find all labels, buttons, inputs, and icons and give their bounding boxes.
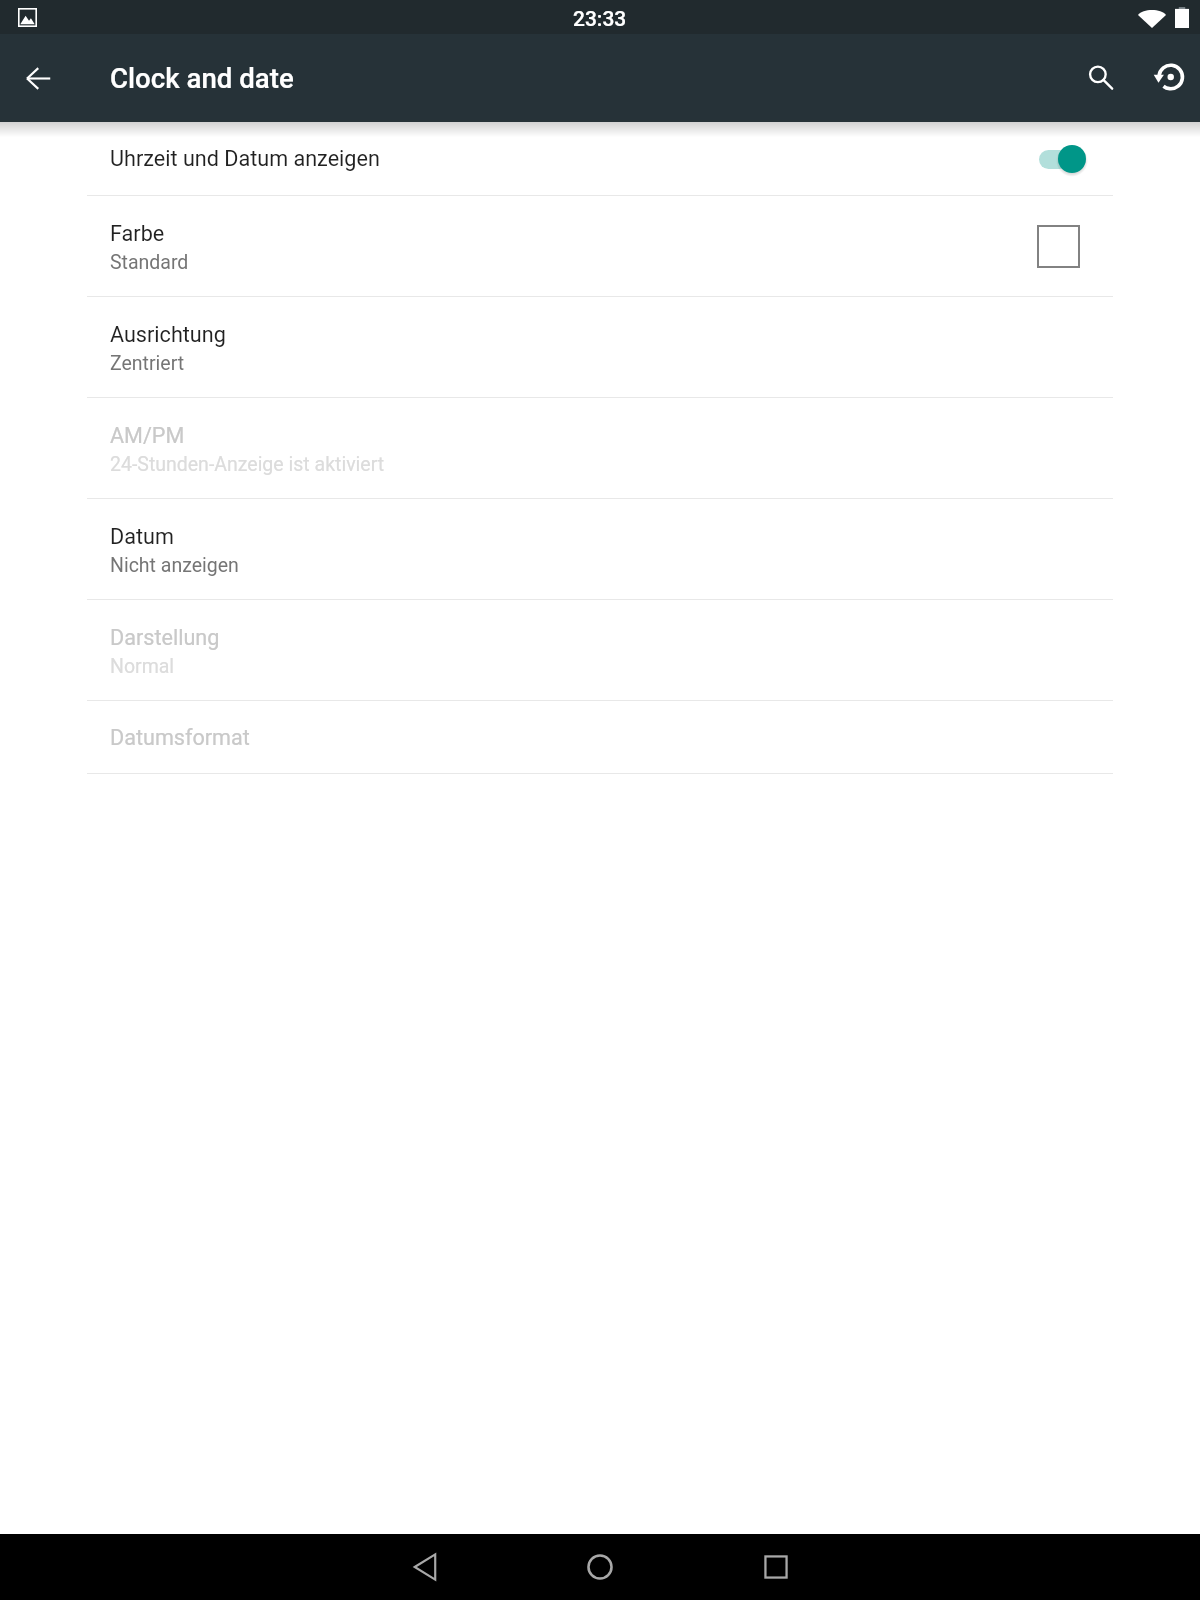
button[interactable]: Restore defaults — [1124, 34, 1200, 122]
button[interactable]: Colour — [1037, 225, 1080, 268]
button[interactable]: Datumsformat — [0, 701, 1200, 773]
staticText: Darstellung — [110, 625, 220, 650]
staticText: 23:33 — [573, 7, 627, 32]
staticText: Datum — [110, 524, 174, 549]
button[interactable]: Datum — [0, 499, 1200, 599]
button[interactable]: AM/PM — [0, 398, 1200, 498]
staticText: Datumsformat — [110, 725, 250, 750]
button[interactable]: Recent apps — [743, 1534, 809, 1600]
staticText: Standard — [110, 251, 189, 274]
staticText: Ausrichtung — [110, 322, 226, 347]
staticText: Clock and date — [110, 62, 294, 94]
staticText: Normal — [110, 655, 175, 678]
button[interactable]: Darstellung — [0, 600, 1200, 700]
button[interactable]: Show clock and date — [1038, 145, 1086, 173]
button[interactable]: Uhrzeit und Datum anzeigen — [0, 122, 1200, 195]
staticText: Uhrzeit und Datum anzeigen — [110, 146, 380, 171]
button[interactable]: Navigate up — [0, 34, 76, 122]
staticText: AM/PM — [110, 423, 185, 448]
staticText: Nicht anzeigen — [110, 554, 239, 577]
staticText: Farbe — [110, 221, 165, 246]
button[interactable]: Back — [392, 1534, 458, 1600]
button[interactable]: Ausrichtung — [0, 297, 1200, 397]
button[interactable]: Home — [567, 1534, 633, 1600]
button[interactable]: Farbe — [0, 196, 1200, 296]
staticText: Zentriert — [110, 352, 185, 375]
button[interactable]: Search — [1057, 34, 1145, 122]
staticText: 24-Stunden-Anzeige ist aktiviert — [110, 453, 385, 476]
